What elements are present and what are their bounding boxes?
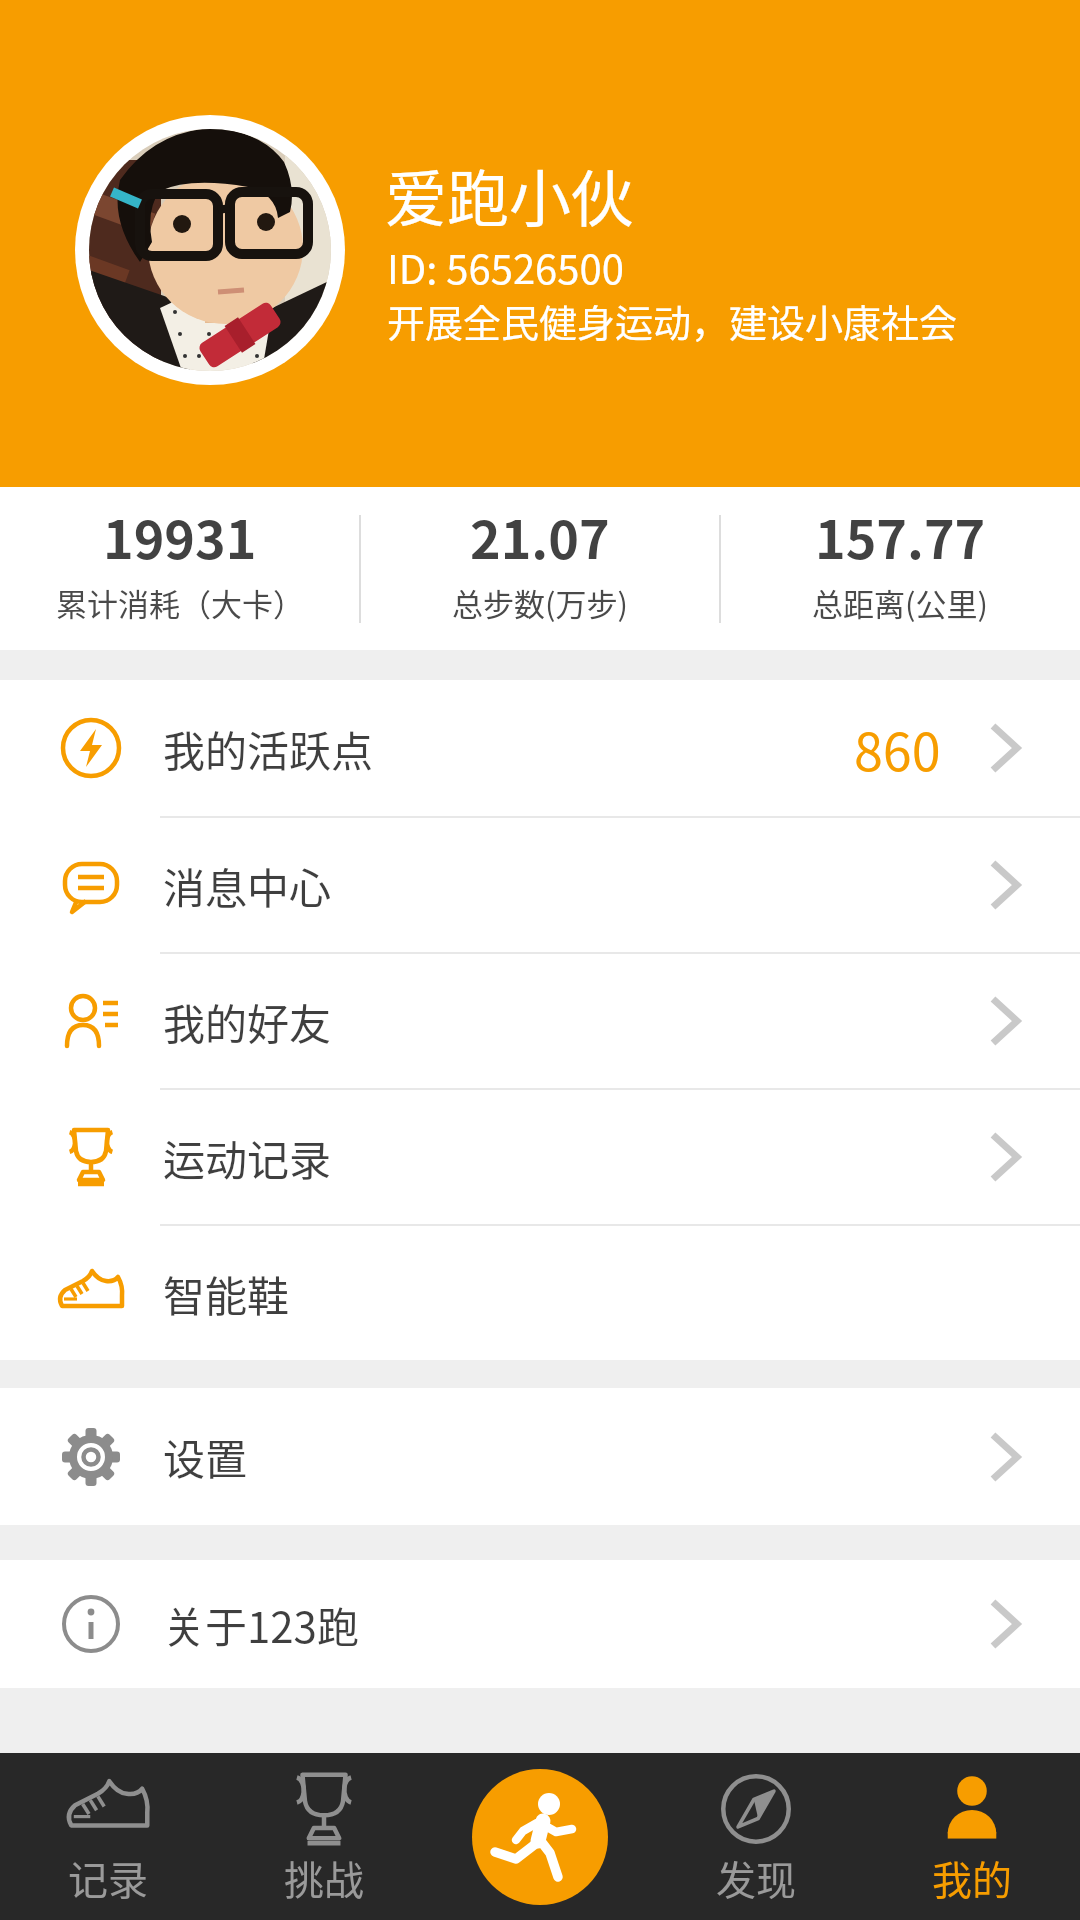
staticText: 19931 xyxy=(103,499,257,574)
staticText: 爱跑小伙 xyxy=(385,150,634,240)
staticText: 设置 xyxy=(163,1426,248,1487)
button[interactable]: 发现 xyxy=(648,1753,864,1920)
button[interactable]: 我的 xyxy=(864,1753,1080,1920)
staticText: 运动记录 xyxy=(163,1127,332,1188)
staticText: 挑战 xyxy=(284,1849,364,1907)
staticText: 860 xyxy=(854,711,941,786)
staticText: ID: 56526500 xyxy=(387,238,624,296)
staticText: 总距离(公里) xyxy=(812,580,988,625)
button[interactable]: 智能鞋 xyxy=(0,1226,1080,1360)
button[interactable]: 设置 xyxy=(0,1388,1080,1525)
button[interactable]: 我的好友 xyxy=(0,954,1080,1088)
staticText: 消息中心 xyxy=(163,855,332,916)
staticText: 157.77 xyxy=(815,499,986,574)
button[interactable]: 关于123跑 xyxy=(0,1560,1080,1688)
staticText: 智能鞋 xyxy=(163,1263,290,1324)
button[interactable] xyxy=(432,1753,648,1920)
button[interactable]: 运动记录 xyxy=(0,1090,1080,1224)
staticText: 关于123跑 xyxy=(163,1594,359,1655)
button[interactable]: 我的活跃点 xyxy=(0,680,1080,816)
button[interactable]: 挑战 xyxy=(216,1753,432,1920)
staticText: 总步数(万步) xyxy=(452,580,628,625)
staticText: 我的活跃点 xyxy=(163,718,374,779)
staticText: 记录 xyxy=(68,1849,148,1907)
staticText: 21.07 xyxy=(470,499,610,574)
staticText: 开展全民健身运动，建设小康社会 xyxy=(387,293,958,348)
staticText: 累计消耗（大卡） xyxy=(56,580,304,625)
staticText: 我的好友 xyxy=(163,991,332,1052)
staticText: 我的 xyxy=(932,1849,1012,1907)
button[interactable]: 记录 xyxy=(0,1753,216,1920)
staticText: 发现 xyxy=(716,1849,796,1907)
button[interactable]: 消息中心 xyxy=(0,818,1080,952)
